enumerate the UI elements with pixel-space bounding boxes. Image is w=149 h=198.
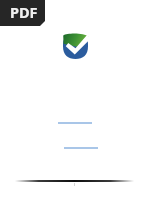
other: Logo bbox=[63, 34, 88, 59]
button[interactable]: PDF bbox=[0, 0, 45, 26]
staticText: PDF bbox=[10, 2, 38, 22]
